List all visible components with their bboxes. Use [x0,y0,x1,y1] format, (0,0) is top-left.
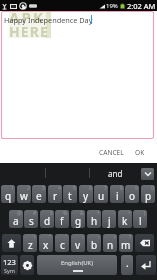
button[interactable]: l [133,210,147,228]
staticText: e [36,189,42,203]
staticText: 9 [135,185,138,192]
staticText: 123 [3,257,16,267]
staticText: q [5,189,12,203]
staticText: Happy Independence Day [4,15,93,25]
staticText: 1 [11,185,14,192]
staticText: : [82,234,84,241]
button[interactable]: g [71,210,85,228]
staticText: @ [17,210,22,217]
staticText: English(UK) [61,259,94,267]
staticText: u [98,189,105,203]
staticText: % [63,210,68,217]
button[interactable]: r [48,185,62,203]
staticText: 2 [27,185,30,192]
button[interactable]: b [87,234,101,252]
button[interactable]: o [125,185,139,203]
staticText: $ [50,210,53,217]
staticText: j [108,214,111,228]
button[interactable]: and [90,163,141,183]
button[interactable]: u [94,185,108,203]
button[interactable]: v [71,234,85,252]
staticText: n [107,238,114,252]
button[interactable]: m [119,234,133,252]
staticText: z [28,238,33,252]
button[interactable]: w [17,185,31,203]
staticText: t [68,189,72,203]
staticText: OK [135,148,145,157]
staticText: r [53,189,58,203]
button[interactable]: Shift [2,234,21,252]
staticText: - [113,210,115,217]
staticText: 7 [104,185,107,192]
staticText: 4 [58,185,61,192]
staticText: and [108,168,123,179]
staticText: CANCEL [99,148,124,157]
button[interactable]: Settings [20,255,34,275]
staticText: l [139,214,142,228]
staticText: x [43,238,49,252]
staticText: . [126,256,129,270]
button[interactable]: p [141,185,155,203]
staticText: s [29,214,34,228]
button[interactable]: e [32,185,46,203]
button[interactable]: n [103,234,117,252]
button[interactable]: Symbols [1,255,18,275]
button[interactable]: x [39,234,53,252]
staticText: b [91,238,98,252]
staticText: " [49,234,52,241]
button[interactable]: y [79,185,93,203]
staticText: k [122,214,128,228]
staticText: APK [9,7,46,27]
button[interactable]: s [24,210,38,228]
button[interactable]: k [118,210,132,228]
staticText: ( [144,210,146,217]
staticText: a [13,214,19,228]
staticText: g [75,214,82,228]
staticText: # [33,210,37,217]
staticText: ' [66,234,68,241]
staticText: f [60,214,64,228]
button[interactable]: z [23,234,37,252]
staticText: Sym [4,267,15,274]
staticText: ? [129,234,132,241]
staticText: h [91,214,98,228]
button[interactable]: q [1,185,15,203]
staticText: 6 [89,185,92,192]
button[interactable]: t [63,185,77,203]
staticText: i [116,189,119,203]
staticText: ; [98,234,100,241]
button[interactable]: . [121,255,133,275]
staticText: & [80,210,84,217]
staticText: o [129,189,136,203]
staticText: c [60,238,65,252]
staticText: 3 [42,185,45,192]
button[interactable]: a [9,210,23,228]
staticText: * [97,210,100,217]
button[interactable]: More suggestions [141,168,154,180]
staticText: 0 [151,185,154,192]
staticText: p [145,189,152,203]
staticText: m [121,238,131,252]
button[interactable]: h [87,210,101,228]
button[interactable]: Enter [136,255,156,275]
staticText: v [75,238,81,252]
staticText: 5 [73,185,76,192]
button[interactable]: CANCEL [95,145,128,160]
button[interactable]: c [55,234,69,252]
button[interactable]: d [40,210,54,228]
button[interactable]: OK [131,145,149,160]
staticText: 8 [120,185,123,192]
staticText: HERE [9,22,49,41]
button[interactable]: Space [37,255,117,275]
staticText: y [83,189,89,203]
staticText: / [114,234,116,241]
staticText: w [20,189,28,203]
staticText: + [128,210,131,217]
button[interactable]: i [110,185,124,203]
staticText: ! [34,234,36,241]
button[interactable]: j [102,210,116,228]
button[interactable]: Backspace [135,234,154,252]
button[interactable]: f [55,210,69,228]
